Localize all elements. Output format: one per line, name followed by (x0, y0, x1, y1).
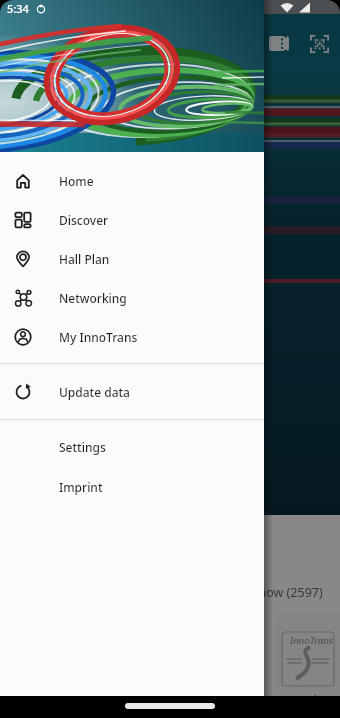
staticText: Update data (59, 384, 130, 400)
staticText: Settings (59, 439, 106, 455)
button[interactable]: My InnoTrans (0, 317, 264, 357)
staticText: Home (59, 173, 94, 189)
staticText: Networking (59, 290, 127, 306)
button[interactable]: Update data (0, 372, 264, 412)
staticText: InnoTrans (290, 634, 334, 647)
button[interactable]: Hall Plan (0, 239, 264, 279)
button[interactable]: Imprint (0, 467, 264, 507)
button[interactable]: Discover (0, 200, 264, 240)
button[interactable]: Home (0, 161, 264, 201)
staticText: NEUE Welt (278, 693, 320, 704)
button[interactable]: Networking (0, 278, 264, 318)
button[interactable]: InnoTrans (274, 613, 340, 695)
button[interactable] (310, 35, 329, 53)
staticText: Discover (59, 212, 109, 228)
staticText: Virtual Show (2597) (210, 584, 323, 601)
staticText: Imprint (59, 479, 103, 495)
button[interactable] (269, 36, 289, 51)
button[interactable]: Settings (0, 427, 264, 467)
staticText: 5:34 (7, 1, 29, 16)
staticText: My InnoTrans (59, 329, 138, 345)
staticText: Hall Plan (59, 251, 110, 267)
